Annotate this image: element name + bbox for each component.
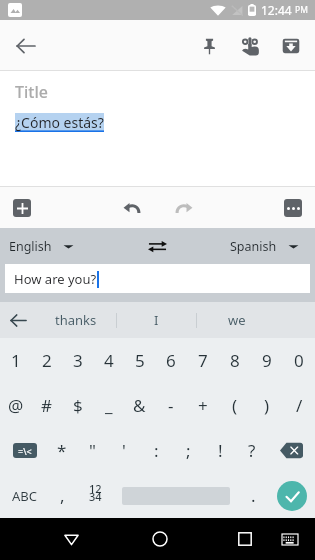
button[interactable]: # bbox=[31, 383, 62, 428]
button[interactable]: @ bbox=[0, 383, 31, 428]
staticText: - bbox=[168, 394, 174, 417]
button[interactable]: $ bbox=[62, 383, 93, 428]
button[interactable]: Back bbox=[53, 521, 89, 557]
button[interactable]: ( bbox=[219, 383, 251, 428]
staticText: 0 bbox=[294, 349, 304, 372]
button[interactable]: : bbox=[140, 428, 172, 473]
button[interactable]: 8 bbox=[219, 338, 251, 383]
staticText: ? bbox=[248, 439, 256, 462]
staticText: @ bbox=[8, 394, 24, 417]
button[interactable]: 5 bbox=[124, 338, 155, 383]
button[interactable]: More options bbox=[277, 192, 309, 224]
staticText: 12 bbox=[89, 481, 102, 496]
staticText: # bbox=[41, 394, 52, 417]
staticText: _ bbox=[105, 394, 113, 417]
staticText: Spanish bbox=[230, 238, 277, 255]
button[interactable]: + bbox=[187, 383, 219, 428]
button[interactable]: Add bbox=[6, 192, 38, 224]
button[interactable]: Reminder bbox=[234, 30, 266, 62]
button[interactable]: 0 bbox=[283, 338, 315, 383]
staticText: . bbox=[251, 484, 256, 507]
button[interactable]: Redo bbox=[168, 192, 200, 224]
staticText: 34 bbox=[89, 489, 102, 504]
staticText: 7 bbox=[198, 349, 208, 372]
staticText: ) bbox=[264, 394, 270, 417]
button[interactable]: ? bbox=[236, 428, 268, 473]
staticText: 1 bbox=[11, 349, 21, 372]
button[interactable]: ) bbox=[251, 383, 283, 428]
button[interactable]: 4 bbox=[93, 338, 124, 383]
staticText: 2 bbox=[42, 349, 52, 372]
button[interactable]: Pin bbox=[193, 30, 225, 62]
staticText: I bbox=[154, 311, 159, 329]
button[interactable]: Archive bbox=[275, 30, 307, 62]
staticText: English bbox=[9, 238, 52, 255]
staticText: " bbox=[89, 439, 96, 462]
button[interactable]: ! bbox=[204, 428, 236, 473]
staticText: 6 bbox=[166, 349, 176, 372]
button[interactable]: & bbox=[124, 383, 155, 428]
button[interactable]: Back bbox=[0, 302, 36, 338]
staticText: we bbox=[228, 311, 246, 329]
button[interactable]: How are you? bbox=[5, 264, 310, 293]
button[interactable]: Back bbox=[11, 31, 41, 61]
staticText: : bbox=[154, 439, 159, 462]
button[interactable]: Undo bbox=[116, 192, 148, 224]
button[interactable]: 9 bbox=[251, 338, 283, 383]
button[interactable]: Backspace bbox=[268, 428, 315, 473]
button[interactable]: Spanish bbox=[205, 228, 315, 264]
button[interactable]: . bbox=[238, 473, 269, 518]
button[interactable]: Swap languages bbox=[110, 228, 205, 264]
staticText: PM bbox=[295, 4, 308, 16]
button[interactable]: Hide keyboard bbox=[276, 525, 304, 553]
button[interactable]: * bbox=[46, 428, 77, 473]
button[interactable]: - bbox=[155, 383, 187, 428]
staticText: + bbox=[198, 394, 208, 417]
button[interactable]: 6 bbox=[155, 338, 187, 383]
staticText: ' bbox=[122, 439, 126, 462]
staticText: ABC bbox=[12, 487, 37, 505]
button[interactable]: ; bbox=[172, 428, 204, 473]
staticText: $ bbox=[73, 394, 83, 417]
staticText: ; bbox=[186, 439, 191, 462]
staticText: Title bbox=[15, 81, 48, 103]
staticText: 8 bbox=[230, 349, 240, 372]
button[interactable]: Numbers bbox=[76, 473, 113, 518]
button[interactable]: thanks bbox=[36, 302, 116, 338]
staticText: ! bbox=[218, 439, 223, 462]
staticText: 5 bbox=[135, 349, 145, 372]
button[interactable]: Home bbox=[142, 521, 178, 557]
staticText: =\< bbox=[18, 445, 32, 457]
button[interactable]: Recent apps bbox=[227, 521, 263, 557]
button[interactable]: 3 bbox=[62, 338, 93, 383]
button[interactable]: English bbox=[0, 228, 110, 264]
staticText: * bbox=[57, 439, 67, 462]
button[interactable]: " bbox=[77, 428, 108, 473]
button[interactable]: / bbox=[283, 383, 315, 428]
button[interactable]: 7 bbox=[187, 338, 219, 383]
button[interactable]: , bbox=[48, 473, 76, 518]
button[interactable]: we bbox=[197, 302, 276, 338]
button[interactable]: ABC bbox=[0, 473, 48, 518]
button[interactable]: ' bbox=[108, 428, 140, 473]
staticText: How are you? bbox=[14, 270, 97, 288]
button[interactable]: Enter bbox=[269, 473, 315, 518]
staticText: ¿Cómo estás? bbox=[15, 113, 104, 132]
button[interactable]: _ bbox=[93, 383, 124, 428]
staticText: 9 bbox=[262, 349, 272, 372]
button[interactable]: Space bbox=[113, 473, 238, 518]
staticText: 4 bbox=[104, 349, 114, 372]
staticText: / bbox=[296, 394, 303, 417]
button[interactable]: 2 bbox=[31, 338, 62, 383]
staticText: 12:44 bbox=[261, 2, 292, 18]
button[interactable]: More symbols bbox=[0, 428, 46, 473]
staticText: , bbox=[60, 484, 65, 507]
staticText: 3 bbox=[73, 349, 83, 372]
button[interactable]: 1 bbox=[0, 338, 31, 383]
staticText: thanks bbox=[55, 311, 97, 329]
staticText: ( bbox=[232, 394, 238, 417]
staticText: & bbox=[133, 394, 146, 417]
button[interactable]: I bbox=[117, 302, 196, 338]
